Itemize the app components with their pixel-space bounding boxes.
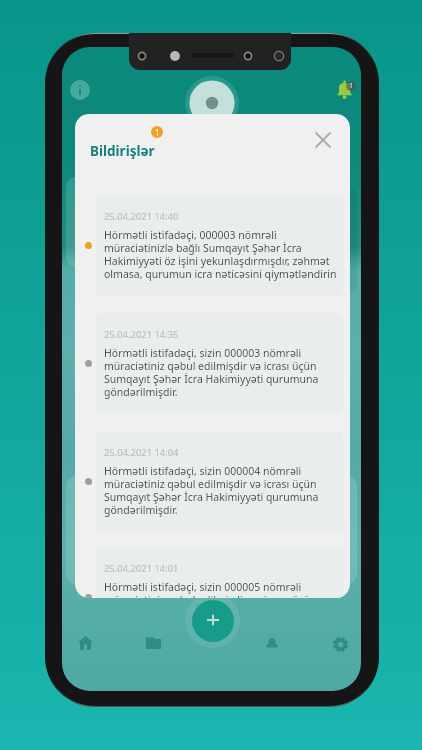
button[interactable]: Information	[70, 80, 90, 100]
button[interactable]: Notifications	[336, 79, 357, 100]
button[interactable]: Close	[310, 127, 336, 153]
button[interactable]: 25.04.2021 14:35	[75, 313, 350, 414]
staticText: 25.04.2021 14:01	[104, 562, 179, 575]
button[interactable]: Add	[192, 600, 234, 642]
button[interactable]: 25.04.2021 14:01	[75, 547, 350, 598]
staticText: 25.04.2021 14:35	[104, 328, 179, 341]
staticText: Bildirişlər	[90, 142, 155, 160]
staticText: Hörmətli istifadəçi, 000003 nömrəli müra…	[104, 228, 338, 281]
staticText: 1	[155, 127, 160, 138]
staticText: 25.04.2021 14:40	[104, 210, 179, 223]
staticText: Hörmətli istifadəçi, sizin 000004 nömrəl…	[104, 464, 338, 517]
button[interactable]: Documents	[139, 629, 167, 657]
staticText: Hörmətli istifadəçi, sizin 000005 nömrəl…	[104, 580, 338, 598]
button[interactable]: 25.04.2021 14:40	[75, 195, 350, 296]
button[interactable]: Home	[71, 629, 99, 657]
button[interactable]: 25.04.2021 14:04	[75, 431, 350, 532]
button[interactable]: Settings	[326, 630, 354, 658]
staticText: 25.04.2021 14:04	[104, 446, 179, 459]
button[interactable]: Profile	[258, 630, 286, 658]
staticText: Hörmətli istifadəçi, sizin 000003 nömrəl…	[104, 346, 338, 399]
staticText: 1	[349, 81, 354, 91]
